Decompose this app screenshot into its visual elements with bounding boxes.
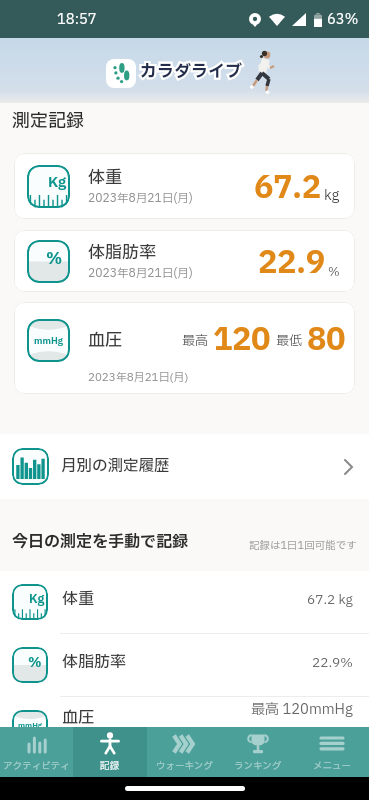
staticText: 18:57 [57,9,97,30]
button[interactable]: 月別の測定履歴 [0,434,369,499]
staticText: 最高 [182,331,209,350]
staticText: 血圧 [88,328,122,353]
button[interactable]: ランキング [221,727,295,777]
staticText: 体重 [88,165,122,190]
button[interactable]: ウォーキング [147,727,221,777]
staticText: 最高 120mmHg [251,699,353,720]
button[interactable]: % [0,634,369,696]
staticText: アクティビティ [3,759,70,773]
staticText: % [28,653,42,673]
staticText: メニュー [313,759,352,773]
staticText: 80 [307,317,346,363]
staticText: 22.9% [312,653,353,672]
staticText: 月別の測定履歴 [61,455,170,478]
staticText: 体重 [62,587,95,611]
staticText: 67.2 kg [307,590,353,609]
button[interactable]: Kg [0,571,369,633]
staticText: カラダライブ [140,59,242,84]
staticText: 測定記録 [12,108,84,135]
staticText: 体脂肪率 [62,650,127,674]
staticText: 2023年8月21日(月) [88,265,193,282]
button[interactable] [106,59,136,88]
staticText: kg [324,185,340,206]
button[interactable]: % [14,230,355,292]
button[interactable]: mmHg [0,697,369,727]
staticText: 血圧 [62,706,95,727]
staticText: ランキング [234,759,282,773]
staticText: 22.9 [258,240,325,286]
staticText: 67.2 [254,165,321,211]
staticText: 今日の測定を手動で記録 [12,530,189,554]
staticText: Kg [48,172,67,193]
staticText: % [46,247,63,271]
staticText: mmHg [18,720,43,727]
staticText: ウォーキング [156,759,213,773]
button[interactable]: 記録 [73,727,147,777]
staticText: 120 [213,317,271,363]
staticText: 記録 [100,759,120,773]
button[interactable]: Kg [14,153,355,219]
button[interactable]: メニュー [295,727,369,777]
staticText: カラダライブ [140,59,242,84]
staticText: 体脂肪率 [88,240,156,265]
staticText: 2023年8月21日(月) [88,190,193,207]
button[interactable]: mmHg [14,302,355,394]
staticText: mmHg [34,334,63,348]
staticText: 記録は1日1回可能です [249,538,357,554]
staticText: 63% [327,9,359,30]
staticText: % [328,263,340,281]
button[interactable]: アクティビティ [0,727,73,777]
staticText: 2023年8月21日(月) [88,369,189,386]
staticText: Kg [29,590,45,608]
staticText: 最低 [276,331,303,350]
